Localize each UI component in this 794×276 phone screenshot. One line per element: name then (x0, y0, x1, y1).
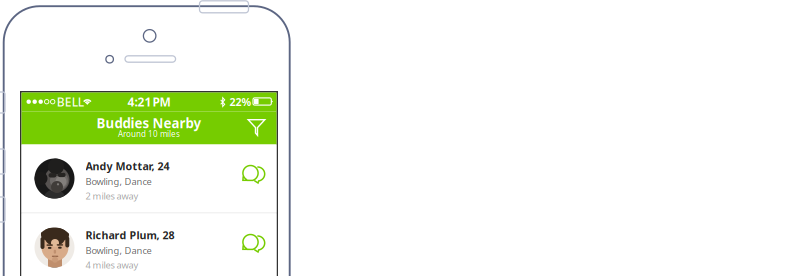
staticText: Bowling, Dance (85, 175, 151, 188)
staticText: Andy Mottar, 24 (85, 159, 169, 173)
button[interactable]: Message Andy Mottar, 24 (237, 156, 269, 189)
button[interactable]: Richard Plum, 28 (21, 213, 276, 276)
button[interactable]: Andy Mottar, 24 (21, 144, 276, 212)
staticText: BELL (57, 94, 84, 110)
staticText: Bowling, Dance (85, 244, 151, 257)
staticText: 4:21 (127, 94, 151, 110)
staticText: PM (152, 94, 170, 110)
staticText: 4 miles away (85, 259, 138, 271)
staticText: 2 miles away (85, 190, 138, 202)
button[interactable]: Filter (242, 114, 270, 141)
button[interactable]: Message Richard Plum, 28 (237, 225, 269, 258)
staticText: Around 10 miles (118, 129, 180, 139)
staticText: Buddies Nearby (96, 114, 201, 132)
staticText: 22% (229, 95, 251, 109)
staticText: Richard Plum, 28 (85, 228, 174, 242)
